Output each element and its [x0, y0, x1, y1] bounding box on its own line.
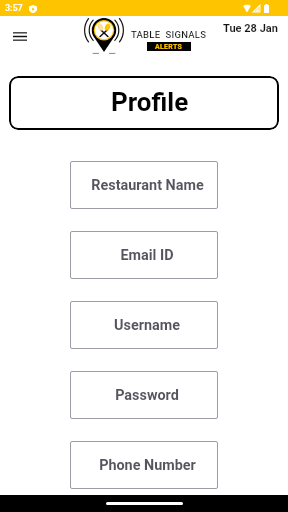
staticText: ALERTS: [155, 43, 183, 51]
button[interactable]: Phone Number: [70, 441, 218, 489]
staticText: Email ID: [120, 247, 174, 264]
button[interactable]: Email ID: [70, 231, 218, 279]
staticText: Phone Number: [99, 457, 196, 474]
staticText: 3:57: [5, 3, 23, 14]
button[interactable]: Profile: [9, 76, 279, 130]
button[interactable]: Password: [70, 371, 218, 419]
staticText: Profile: [111, 87, 189, 117]
staticText: Username: [114, 317, 180, 334]
button[interactable]: Menu: [6, 22, 34, 50]
staticText: Tue 28 Jan: [223, 22, 278, 35]
button[interactable]: Username: [70, 301, 218, 349]
staticText: TABLE SIGNALS: [131, 29, 207, 40]
staticText: Restaurant Name: [91, 177, 204, 194]
staticText: Password: [115, 387, 179, 404]
button[interactable]: Restaurant Name: [70, 161, 218, 209]
